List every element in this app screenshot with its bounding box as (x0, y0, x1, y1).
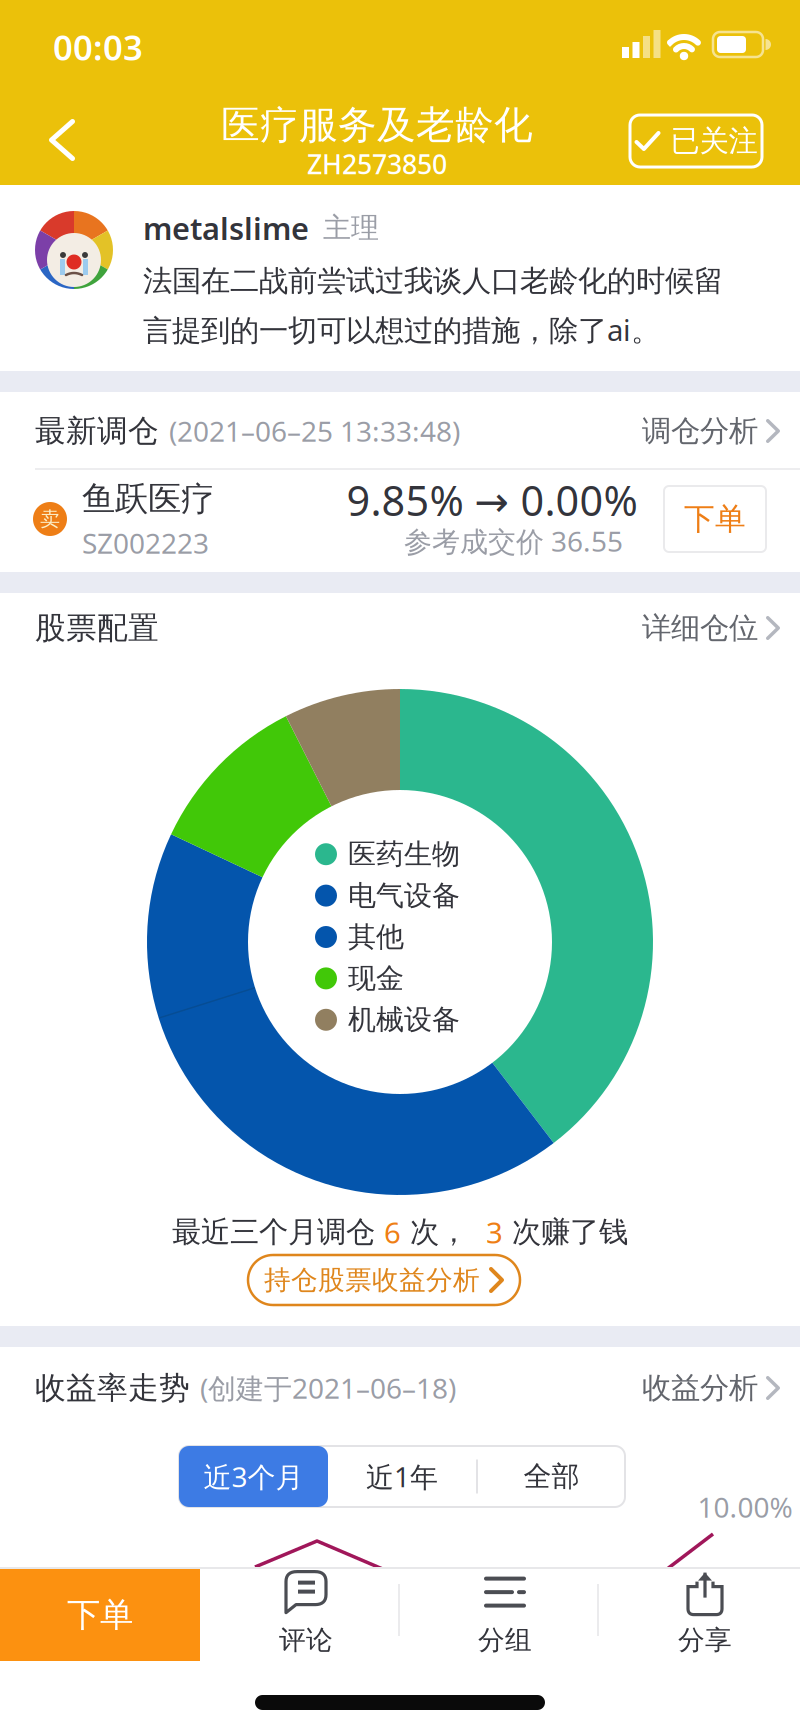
staticText: 10.00% (697, 1488, 792, 1526)
button[interactable]: 持仓股票收益分析 (248, 1255, 520, 1305)
staticText: 评论 (279, 1624, 333, 1656)
staticText: 近1年 (366, 1458, 438, 1495)
staticText: 次赚了钱 (503, 1214, 628, 1250)
staticText: 医疗服务及老龄化 (221, 101, 533, 149)
staticText: 电气设备 (348, 878, 460, 913)
button[interactable]: 卖 (20, 471, 640, 567)
staticText: 详细仓位 (642, 610, 758, 646)
staticText: 其他 (348, 920, 404, 954)
staticText: 下单 (684, 500, 746, 538)
button[interactable]: 分享 (630, 1565, 780, 1661)
staticText: 卖 (40, 507, 60, 531)
staticText: (创建于2021–06–18) (200, 1369, 456, 1407)
staticText: 下单 (67, 1594, 133, 1635)
button[interactable]: 收益分析 (642, 1370, 780, 1406)
staticText: 6 (384, 1212, 401, 1251)
staticText: 分组 (478, 1624, 532, 1656)
button[interactable]: Back (34, 112, 90, 168)
staticText: 最近三个月调仓 (172, 1214, 384, 1250)
button[interactable]: 详细仓位 (642, 610, 780, 646)
button[interactable]: 调仓分析 (642, 413, 780, 449)
staticText: 参考成交价 36.55 (404, 522, 623, 560)
button[interactable]: 评论 (231, 1565, 381, 1661)
button[interactable]: 下单 (664, 486, 766, 552)
button[interactable]: 分组 (430, 1565, 580, 1661)
staticText: 机械设备 (348, 1003, 460, 1037)
staticText: 言提到的一切可以想过的措施，除了ai。 (143, 310, 660, 349)
button[interactable]: 全部 (478, 1446, 625, 1507)
staticText: 次， (401, 1214, 486, 1250)
staticText: 全部 (523, 1459, 579, 1494)
staticText: 3 (486, 1212, 503, 1251)
staticText: 主理 (323, 211, 379, 245)
staticText: metalslime (143, 208, 309, 248)
staticText: 股票配置 (35, 609, 159, 647)
staticText: 调仓分析 (642, 413, 758, 449)
staticText: 00:03 (53, 24, 143, 70)
staticText: SZ002223 (82, 524, 209, 562)
button[interactable]: 下单 (0, 1569, 200, 1661)
staticText: 鱼跃医疗 (82, 478, 214, 519)
staticText: 医药生物 (348, 837, 460, 871)
staticText: 持仓股票收益分析 (264, 1264, 480, 1296)
staticText: 收益分析 (642, 1370, 758, 1406)
staticText: (2021–06–25 13:33:48) (169, 412, 460, 450)
button[interactable]: metalslime 主页 (35, 211, 113, 289)
staticText: 最新调仓 (35, 412, 159, 450)
staticText: 分享 (678, 1624, 732, 1656)
staticText: 已关注 (670, 123, 757, 159)
staticText: 法国在二战前尝试过我谈人口老龄化的时候留 (143, 263, 723, 299)
button[interactable]: 近3个月 (179, 1446, 328, 1507)
staticText: 收益率走势 (35, 1369, 190, 1407)
staticText: 9.85% → 0.00% (346, 473, 637, 527)
button[interactable]: 近1年 (328, 1446, 476, 1507)
staticText: 近3个月 (203, 1458, 303, 1495)
button[interactable]: 已关注 (630, 115, 762, 167)
staticText: ZH2573850 (307, 146, 447, 182)
staticText: 现金 (348, 961, 404, 996)
